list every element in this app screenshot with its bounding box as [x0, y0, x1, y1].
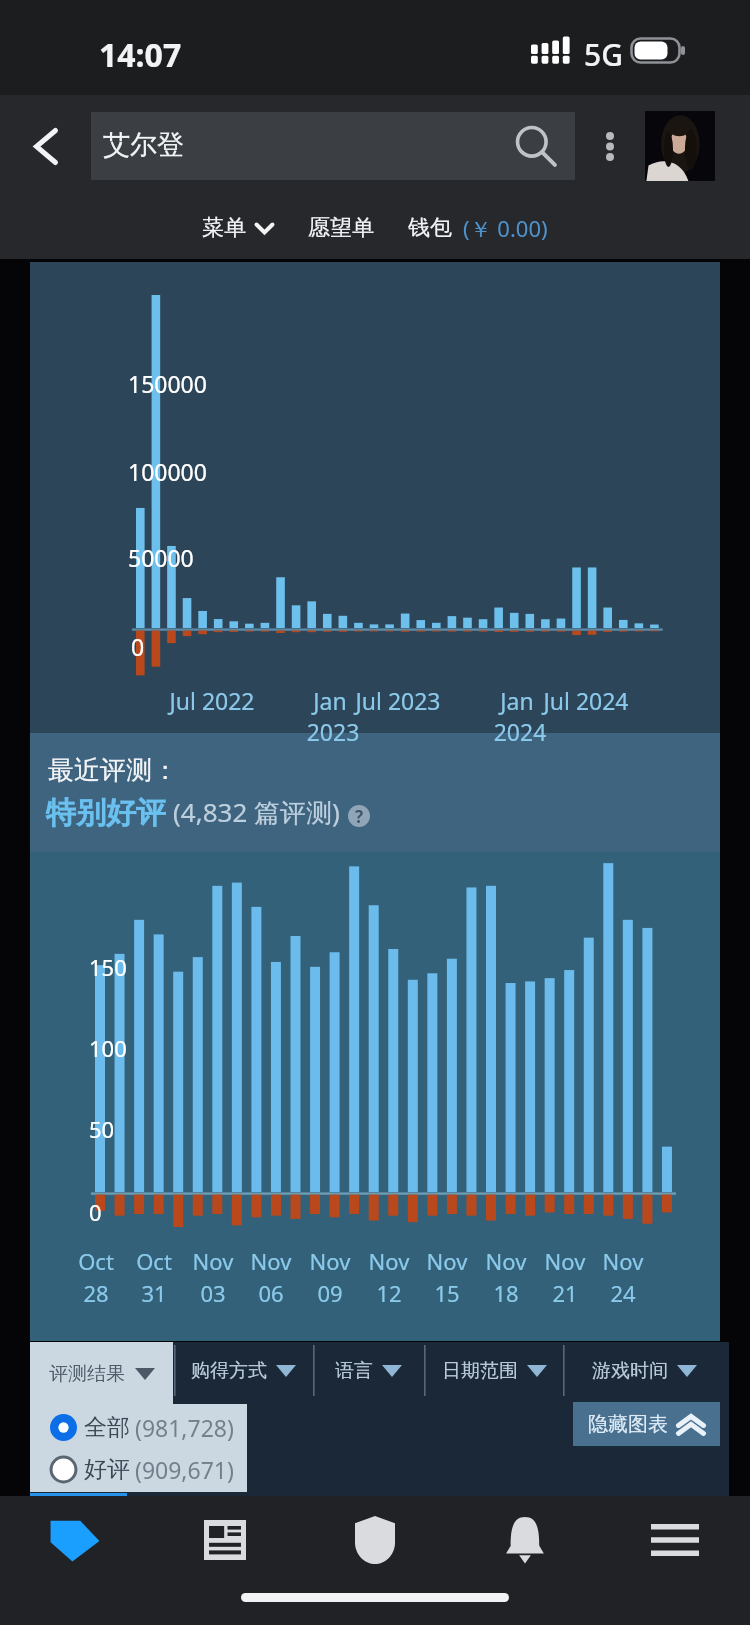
button[interactable]: 艾尔登	[91, 112, 575, 180]
staticText: Nov	[181, 1246, 361, 1276]
button[interactable]: Back	[0, 95, 91, 197]
button[interactable]: 评测结果	[30, 1342, 173, 1404]
button[interactable]: 购得方式	[173, 1342, 313, 1399]
button[interactable]: 游戏时间	[564, 1342, 724, 1399]
other: Help	[348, 805, 370, 827]
staticText: 50	[89, 1114, 115, 1144]
button[interactable]: Notifications	[450, 1496, 600, 1584]
staticText: Jul 2024	[496, 685, 676, 716]
staticText: Oct	[6, 1246, 186, 1276]
staticText: 0	[131, 631, 145, 662]
staticText: 语言	[335, 1359, 373, 1383]
staticText: Jul 2022	[122, 685, 302, 716]
staticText: 31	[64, 1278, 244, 1308]
staticText: 150000	[128, 368, 207, 399]
staticText: (909,671)	[135, 1454, 234, 1485]
button[interactable]: 好评	[50, 1454, 234, 1485]
button[interactable]: Profile	[645, 111, 715, 181]
staticText: 2024	[430, 716, 610, 747]
staticText: Jan	[427, 685, 607, 716]
button[interactable]: News	[150, 1496, 300, 1584]
staticText: 2023	[243, 716, 423, 747]
button[interactable]: 钱包	[408, 207, 548, 249]
staticText: 24	[533, 1278, 713, 1308]
staticText: 5G	[584, 34, 623, 75]
staticText: 100000	[128, 456, 207, 487]
staticText: 菜单	[202, 214, 246, 242]
staticText: Nov	[357, 1246, 537, 1276]
staticText: (4,832 篇评测)	[173, 794, 340, 830]
button[interactable]: Store	[0, 1496, 150, 1584]
staticText: Nov	[533, 1246, 713, 1276]
staticText: (981,728)	[135, 1412, 234, 1443]
staticText: 15	[357, 1278, 537, 1308]
staticText: 钱包	[408, 214, 452, 242]
staticText: 150	[89, 952, 127, 982]
staticText: Jul 2023	[308, 685, 488, 716]
staticText: 全部	[84, 1413, 130, 1442]
staticText: 100	[89, 1033, 127, 1063]
staticText: Jan	[240, 685, 420, 716]
staticText: 18	[416, 1278, 596, 1308]
staticText: 最近评测：	[48, 754, 178, 787]
staticText: 28	[6, 1278, 186, 1308]
staticText: 0	[89, 1197, 102, 1227]
button[interactable]: 特别好评	[46, 794, 370, 832]
staticText: 购得方式	[191, 1359, 267, 1383]
button[interactable]: Guard	[300, 1496, 450, 1584]
button[interactable]: 日期范围	[424, 1342, 564, 1399]
staticText: Nov	[299, 1246, 479, 1276]
staticText: Oct	[64, 1246, 244, 1276]
button[interactable]: 隐藏图表	[573, 1402, 720, 1446]
staticText: 03	[123, 1278, 303, 1308]
staticText: 游戏时间	[592, 1359, 668, 1383]
staticText: Nov	[123, 1246, 303, 1276]
staticText: 日期范围	[442, 1359, 518, 1383]
staticText: ?	[355, 805, 364, 827]
staticText: Nov	[416, 1246, 596, 1276]
staticText: Nov	[475, 1246, 655, 1276]
staticText: 艾尔登	[103, 128, 184, 162]
button[interactable]: Menu	[600, 1496, 750, 1584]
staticText: 好评	[84, 1455, 130, 1484]
staticText: 06	[181, 1278, 361, 1308]
staticText: 特别好评	[46, 794, 166, 832]
staticText: 50000	[128, 542, 194, 573]
button[interactable]: More options	[575, 95, 645, 197]
staticText: 隐藏图表	[588, 1412, 668, 1437]
staticText: 评测结果	[49, 1362, 125, 1386]
staticText: Nov	[240, 1246, 420, 1276]
staticText: 12	[299, 1278, 479, 1308]
button[interactable]: 全部	[50, 1412, 234, 1443]
staticText: (￥ 0.00)	[463, 213, 548, 243]
button[interactable]: 语言	[313, 1342, 424, 1399]
staticText: 21	[475, 1278, 655, 1308]
button[interactable]: 愿望单	[308, 208, 374, 248]
staticText: 09	[240, 1278, 420, 1308]
button[interactable]: 菜单	[202, 208, 274, 248]
staticText: 14:07	[99, 33, 182, 77]
